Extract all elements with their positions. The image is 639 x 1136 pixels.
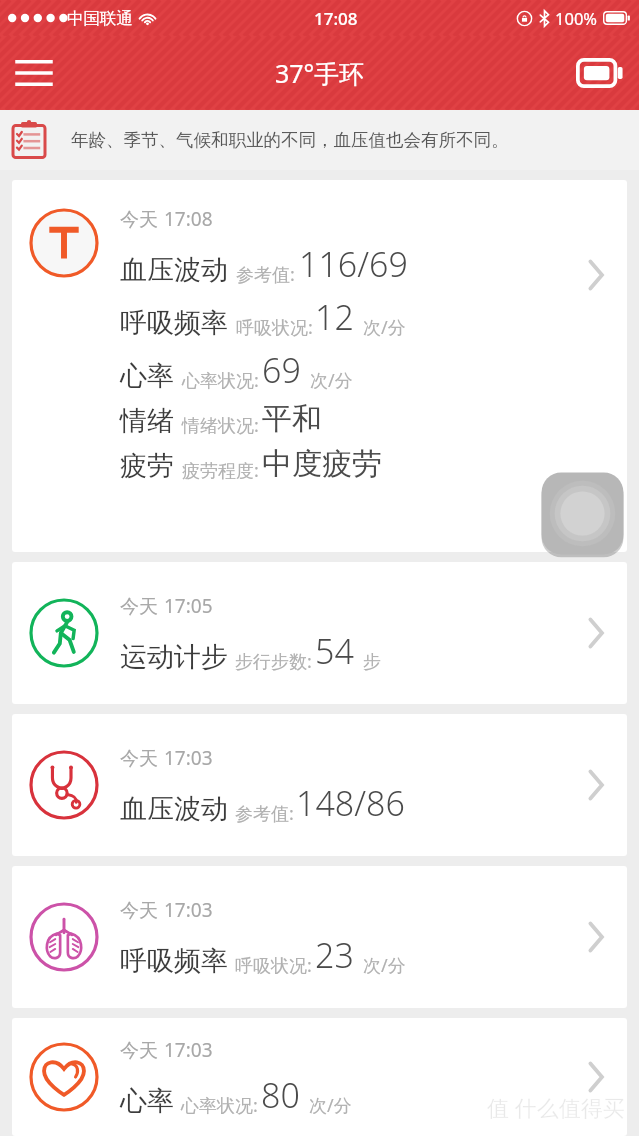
staticText: 148/86 [296, 780, 405, 826]
staticText: 心率状况: [182, 368, 259, 393]
staticText: 17:03 [164, 1037, 213, 1063]
staticText: 17:03 [164, 897, 213, 923]
staticText: 呼吸状况: [235, 953, 312, 978]
staticText: 100% [555, 7, 598, 29]
staticText: 69 [262, 347, 301, 393]
button[interactable]: Device battery [571, 44, 629, 102]
staticText: 17:08 [314, 7, 358, 30]
staticText: 中度疲劳 [262, 445, 382, 483]
staticText: 今天 [120, 899, 158, 923]
staticText: 17:03 [164, 745, 213, 771]
staticText: 心率 [120, 359, 174, 393]
staticText: 情绪状况: [182, 413, 259, 438]
button[interactable]: 今天 [12, 714, 627, 856]
staticText: 今天 [120, 747, 158, 771]
staticText: 心率状况: [181, 1093, 258, 1118]
staticText: 今天 [120, 208, 158, 232]
staticText: 54 [315, 628, 354, 674]
staticText: 情绪 [120, 404, 174, 438]
staticText: 今天 [120, 595, 158, 619]
staticText: 次/分 [310, 368, 353, 393]
staticText: 12 [315, 294, 354, 340]
staticText: 116/69 [299, 241, 408, 287]
button[interactable]: 今天 [12, 562, 627, 704]
button[interactable]: 年龄、季节、气候和职业的不同，血压值也会有所不同。 [0, 110, 639, 170]
staticText: 23 [315, 932, 354, 978]
staticText: 17:08 [164, 206, 213, 232]
button[interactable]: Assistive touch [530, 461, 635, 566]
staticText: 呼吸频率 [120, 944, 228, 978]
staticText: 疲劳程度: [182, 458, 259, 483]
staticText: 次/分 [363, 953, 406, 978]
staticText: 今天 [120, 1039, 158, 1063]
staticText: 血压波动 [120, 792, 228, 826]
button[interactable]: Menu [6, 45, 62, 101]
staticText: 心率 [120, 1084, 174, 1118]
button[interactable]: 今天 [12, 180, 627, 552]
staticText: 值 什么值得买 [487, 1092, 625, 1122]
staticText: 次/分 [309, 1093, 352, 1118]
button[interactable]: 今天 [12, 1018, 627, 1136]
button[interactable]: 今天 [12, 866, 627, 1008]
staticText: 平和 [262, 400, 322, 438]
staticText: 年龄、季节、气候和职业的不同，血压值也会有所不同。 [71, 129, 509, 151]
staticText: 呼吸状况: [236, 315, 313, 340]
staticText: 37°手环 [275, 56, 365, 90]
staticText: 参考值: [235, 801, 294, 826]
staticText: 中国联通 [67, 8, 133, 29]
staticText: 80 [261, 1072, 300, 1118]
staticText: 运动计步 [120, 640, 228, 674]
staticText: 疲劳 [120, 449, 174, 483]
staticText: 次/分 [363, 315, 406, 340]
staticText: 呼吸频率 [120, 306, 228, 340]
staticText: 17:05 [164, 593, 213, 619]
staticText: 步行步数: [235, 649, 312, 674]
staticText: 步 [363, 651, 381, 674]
staticText: 血压波动 [120, 253, 228, 287]
staticText: 参考值: [236, 262, 295, 287]
